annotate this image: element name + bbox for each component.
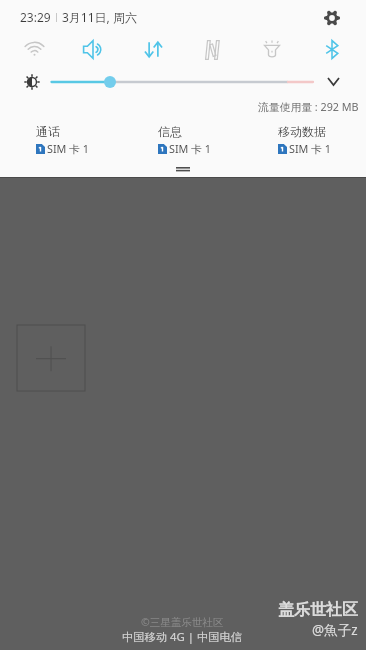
staticText: 通话 <box>36 124 60 139</box>
staticText: SIM 卡 1 <box>169 141 211 156</box>
button[interactable]: Mobile data <box>133 34 173 64</box>
button[interactable]: Sound <box>73 34 113 64</box>
staticText: SIM 卡 1 <box>47 141 89 156</box>
staticText: 流量使用量 : 292 MB <box>258 99 359 114</box>
button[interactable]: NFC <box>192 34 232 64</box>
staticText: 信息 <box>158 124 182 139</box>
button[interactable]: Bluetooth <box>312 34 352 64</box>
staticText: SIM 卡 1 <box>289 141 331 156</box>
button[interactable]: Settings <box>320 6 344 30</box>
staticText: 盖乐世社区 <box>278 600 358 620</box>
button[interactable]: 通话 <box>36 124 128 156</box>
staticText: 移动数据 <box>278 124 326 139</box>
staticText: 3月11日, 周六 <box>62 9 137 25</box>
button[interactable]: Expand panel <box>322 70 344 92</box>
staticText: ©三星盖乐世社区 <box>141 615 224 629</box>
button[interactable]: 信息 <box>158 124 250 156</box>
button[interactable]: Wi-Fi <box>14 34 54 64</box>
staticText: 23:29 <box>20 9 51 25</box>
staticText: 中国移动 4G | 中国电信 <box>122 629 243 644</box>
button[interactable]: Flashlight <box>252 34 292 64</box>
staticText: @魚子z <box>312 621 358 639</box>
button[interactable]: 移动数据 <box>278 124 366 156</box>
